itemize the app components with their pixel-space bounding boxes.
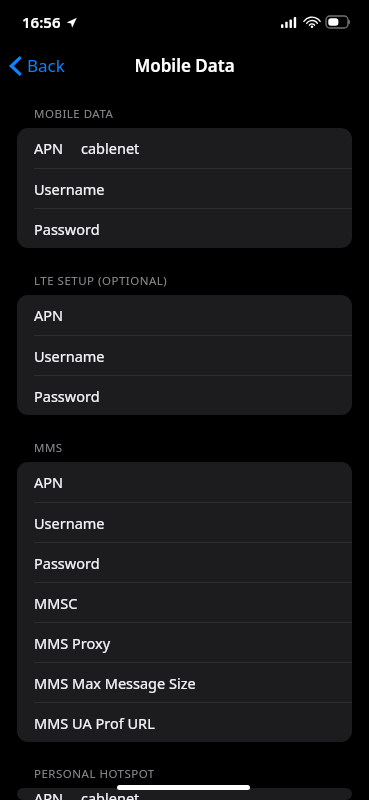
staticText: MMS Max Message Size [34,673,196,693]
button[interactable]: Username [17,503,352,542]
staticText: LTE SETUP (OPTIONAL) [34,273,168,289]
staticText: APN [34,305,64,325]
staticText: APN [34,788,64,800]
staticText: MMS [34,440,63,456]
staticText: MOBILE DATA [34,106,114,122]
button[interactable]: MMS Max Message Size [17,663,352,702]
button[interactable]: MMS UA Prof URL [17,703,352,742]
staticText: Password [34,219,100,239]
staticText: Username [34,179,105,199]
staticText: 16:56 [22,12,61,32]
button[interactable]: Back [0,50,75,81]
staticText: Username [34,513,105,533]
staticText: Password [34,386,100,406]
staticText: MMS UA Prof URL [34,713,155,733]
staticText: PERSONAL HOTSPOT [34,766,155,782]
button[interactable]: APN [17,295,352,335]
staticText: APN [34,472,64,492]
button[interactable]: MMS Proxy [17,623,352,662]
button[interactable]: APN [17,788,352,800]
staticText: APN [34,138,64,158]
button[interactable]: Password [17,376,352,415]
button[interactable]: Password [17,543,352,582]
button[interactable]: Password [17,209,352,248]
button[interactable]: MMSC [17,583,352,622]
staticText: cablenet [81,788,140,800]
staticText: Mobile Data [134,54,235,77]
button[interactable]: APN [17,128,352,168]
staticText: MMS Proxy [34,633,111,653]
button[interactable]: APN [17,462,352,502]
staticText: Username [34,346,105,366]
button[interactable]: Username [17,169,352,208]
staticText: cablenet [81,138,140,158]
button[interactable]: Username [17,336,352,375]
staticText: Back [27,54,65,77]
staticText: Password [34,553,100,573]
staticText: MMSC [34,593,78,613]
